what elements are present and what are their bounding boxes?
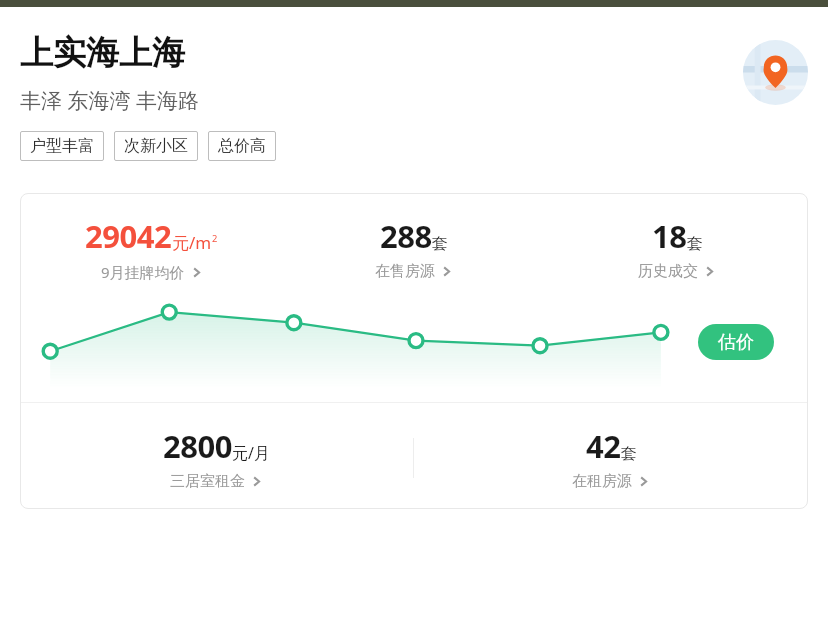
button[interactable]: 42 <box>572 425 650 491</box>
staticText: 总价高 <box>218 136 266 156</box>
staticText: 估价 <box>718 331 754 354</box>
staticText: 套 <box>432 234 448 254</box>
button[interactable]: 18 <box>638 215 716 281</box>
button[interactable]: 288 <box>375 215 453 281</box>
staticText: 次新小区 <box>124 136 188 156</box>
staticText: 18 <box>652 215 687 257</box>
button[interactable]: 总价高 <box>208 131 276 161</box>
staticText: 2800 <box>163 425 232 467</box>
button[interactable]: 2800 <box>163 425 270 491</box>
staticText: 9月挂牌均价 <box>101 262 185 282</box>
button[interactable]: Map location <box>743 40 808 105</box>
staticText: 户型丰富 <box>30 136 94 156</box>
button[interactable]: 次新小区 <box>114 131 198 161</box>
staticText: 套 <box>621 444 637 464</box>
button[interactable]: 估价 <box>698 324 774 360</box>
staticText: 42 <box>586 425 621 467</box>
staticText: 三居室租金 <box>170 472 245 491</box>
button[interactable]: 29042 <box>85 215 218 282</box>
staticText: 元/月 <box>232 442 270 464</box>
staticText: 在租房源 <box>572 472 632 491</box>
staticText: 在售房源 <box>375 262 435 281</box>
staticText: 29042 <box>85 215 172 257</box>
staticText: 288 <box>380 215 432 257</box>
staticText: 元/m <box>172 231 212 254</box>
staticText: 2 <box>212 232 218 245</box>
staticText: 套 <box>687 234 703 254</box>
staticText: 历史成交 <box>638 262 698 281</box>
button[interactable]: 户型丰富 <box>20 131 104 161</box>
staticText: 丰泽 东海湾 丰海路 <box>20 86 199 115</box>
staticText: 上实海上海 <box>20 32 185 74</box>
